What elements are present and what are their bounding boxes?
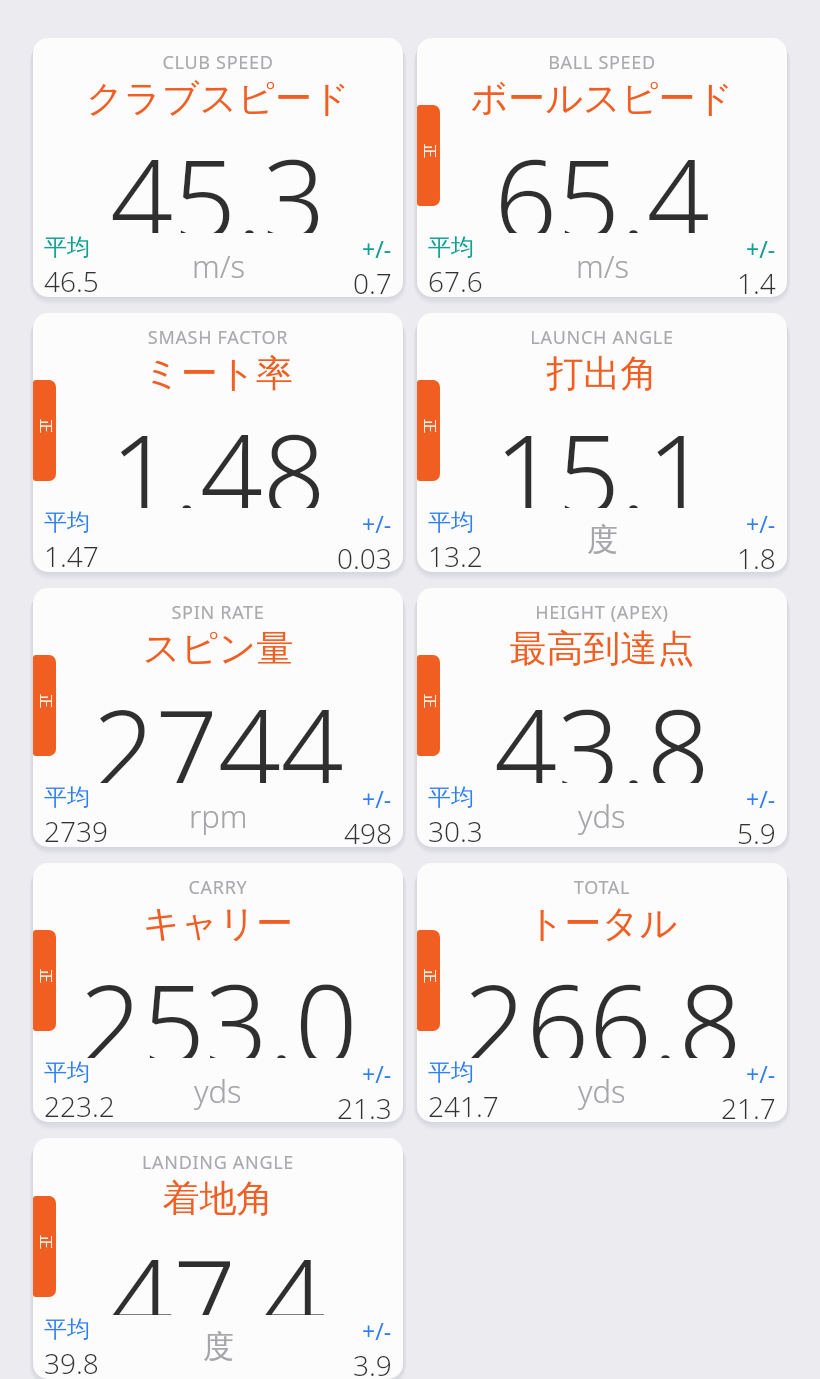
staticText: 2744 bbox=[92, 672, 344, 783]
staticText: 266.8 bbox=[463, 947, 742, 1058]
staticText: m/s bbox=[192, 245, 245, 287]
staticText: 21.7 bbox=[721, 1089, 776, 1122]
staticText: rpm bbox=[189, 795, 248, 837]
button[interactable]: 正規化 bbox=[33, 655, 56, 756]
staticText: 5.9 bbox=[737, 814, 776, 847]
staticText: ミート率 bbox=[33, 350, 403, 397]
button[interactable]: 正規化 bbox=[417, 655, 440, 756]
staticText: +/- bbox=[362, 1315, 392, 1346]
staticText: 正規化 bbox=[35, 1235, 53, 1258]
button[interactable]: CARRY bbox=[33, 863, 403, 1122]
staticText: +/- bbox=[362, 783, 392, 814]
staticText: TOTAL bbox=[417, 875, 787, 900]
staticText: トータル bbox=[417, 900, 787, 947]
staticText: 正規化 bbox=[35, 694, 53, 717]
staticText: 3.9 bbox=[353, 1346, 392, 1379]
staticText: +/- bbox=[362, 1058, 392, 1089]
staticText: 15.1 bbox=[494, 397, 710, 508]
staticText: BALL SPEED bbox=[417, 50, 787, 75]
staticText: 67.6 bbox=[428, 262, 483, 297]
staticText: 平均 bbox=[44, 1058, 90, 1087]
staticText: +/- bbox=[746, 508, 776, 539]
staticText: 21.3 bbox=[337, 1089, 392, 1122]
staticText: 着地角 bbox=[33, 1175, 403, 1222]
staticText: クラブスピード bbox=[33, 75, 403, 122]
staticText: 1.4 bbox=[737, 264, 776, 297]
staticText: 253.0 bbox=[79, 947, 358, 1058]
staticText: 最高到達点 bbox=[417, 625, 787, 672]
button[interactable]: CLUB SPEED bbox=[33, 38, 403, 297]
button[interactable]: LANDING ANGLE bbox=[33, 1138, 403, 1379]
button[interactable]: SPIN RATE bbox=[33, 588, 403, 847]
staticText: 平均 bbox=[428, 233, 474, 262]
button[interactable]: 正規化 bbox=[417, 930, 440, 1031]
staticText: +/- bbox=[746, 233, 776, 264]
staticText: 度 bbox=[587, 520, 618, 559]
staticText: スピン量 bbox=[33, 625, 403, 672]
staticText: キャリー bbox=[33, 900, 403, 947]
staticText: +/- bbox=[362, 233, 392, 264]
staticText: 13.2 bbox=[428, 537, 483, 572]
staticText: 平均 bbox=[428, 783, 474, 812]
staticText: 223.2 bbox=[44, 1087, 115, 1122]
button[interactable]: 正規化 bbox=[33, 930, 56, 1031]
button[interactable]: 正規化 bbox=[33, 380, 56, 481]
staticText: 平均 bbox=[428, 508, 474, 537]
staticText: 平均 bbox=[44, 508, 90, 537]
staticText: 正規化 bbox=[419, 419, 437, 442]
staticText: SMASH FACTOR bbox=[33, 325, 403, 350]
staticText: 1.8 bbox=[737, 539, 776, 572]
staticText: 47.4 bbox=[110, 1222, 326, 1315]
staticText: 0.7 bbox=[353, 264, 392, 297]
staticText: 打出角 bbox=[417, 350, 787, 397]
staticText: SPIN RATE bbox=[33, 600, 403, 625]
staticText: 241.7 bbox=[428, 1087, 499, 1122]
staticText: LAUNCH ANGLE bbox=[417, 325, 787, 350]
staticText: 2739 bbox=[44, 812, 108, 847]
staticText: 39.8 bbox=[44, 1344, 99, 1379]
staticText: +/- bbox=[746, 783, 776, 814]
staticText: 平均 bbox=[44, 783, 90, 812]
button[interactable]: 正規化 bbox=[417, 105, 440, 206]
staticText: 46.5 bbox=[44, 262, 99, 297]
staticText: +/- bbox=[362, 508, 392, 539]
staticText: 平均 bbox=[428, 1058, 474, 1087]
staticText: 正規化 bbox=[419, 144, 437, 167]
staticText: LANDING ANGLE bbox=[33, 1150, 403, 1175]
staticText: 0.03 bbox=[337, 539, 392, 572]
staticText: 正規化 bbox=[419, 969, 437, 992]
button[interactable]: SMASH FACTOR bbox=[33, 313, 403, 572]
staticText: 度 bbox=[203, 1327, 234, 1366]
staticText: 45.3 bbox=[110, 122, 326, 233]
staticText: ボールスピード bbox=[417, 75, 787, 122]
staticText: 正規化 bbox=[35, 419, 53, 442]
staticText: 正規化 bbox=[35, 969, 53, 992]
staticText: HEIGHT (APEX) bbox=[417, 600, 787, 625]
button[interactable]: 正規化 bbox=[417, 380, 440, 481]
button[interactable]: TOTAL bbox=[417, 863, 787, 1122]
staticText: m/s bbox=[576, 245, 629, 287]
staticText: 正規化 bbox=[419, 694, 437, 717]
staticText: CLUB SPEED bbox=[33, 50, 403, 75]
staticText: 1.48 bbox=[110, 397, 326, 508]
staticText: 平均 bbox=[44, 233, 90, 262]
staticText: yds bbox=[578, 795, 626, 837]
staticText: yds bbox=[578, 1070, 626, 1112]
staticText: CARRY bbox=[33, 875, 403, 900]
staticText: +/- bbox=[746, 1058, 776, 1089]
button[interactable]: BALL SPEED bbox=[417, 38, 787, 297]
button[interactable]: LAUNCH ANGLE bbox=[417, 313, 787, 572]
button[interactable]: HEIGHT (APEX) bbox=[417, 588, 787, 847]
staticText: 30.3 bbox=[428, 812, 483, 847]
staticText: yds bbox=[194, 1070, 242, 1112]
staticText: 43.8 bbox=[494, 672, 710, 783]
staticText: 1.47 bbox=[44, 537, 99, 572]
staticText: 65.4 bbox=[494, 122, 710, 233]
staticText: 498 bbox=[344, 814, 392, 847]
button[interactable]: 正規化 bbox=[33, 1196, 56, 1297]
staticText: 平均 bbox=[44, 1315, 90, 1344]
